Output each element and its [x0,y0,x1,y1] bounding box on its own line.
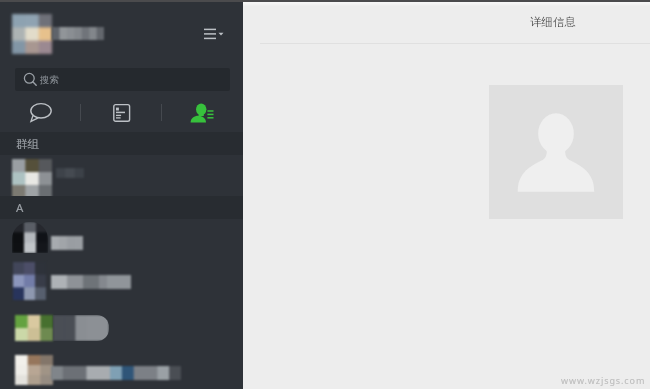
button[interactable]: 搜索 [15,68,230,91]
button[interactable]: Contact 1 [0,219,243,260]
button[interactable]: Group [0,155,243,196]
button[interactable]: Contacts [162,96,243,129]
staticText: 详细信息 [530,15,576,29]
button[interactable]: Contact 2 [0,260,243,308]
button[interactable]: Contact 3 [0,308,243,350]
button[interactable]: Contacts list [81,96,161,129]
staticText: 群组 [16,137,39,151]
button[interactable]: Chats [0,96,81,129]
staticText: A [16,200,24,216]
staticText: www.wzjsgs.com [561,374,646,386]
button[interactable]: Menu [196,20,230,46]
staticText: 搜索 [40,74,59,86]
button[interactable]: Contact 4 [0,350,243,389]
